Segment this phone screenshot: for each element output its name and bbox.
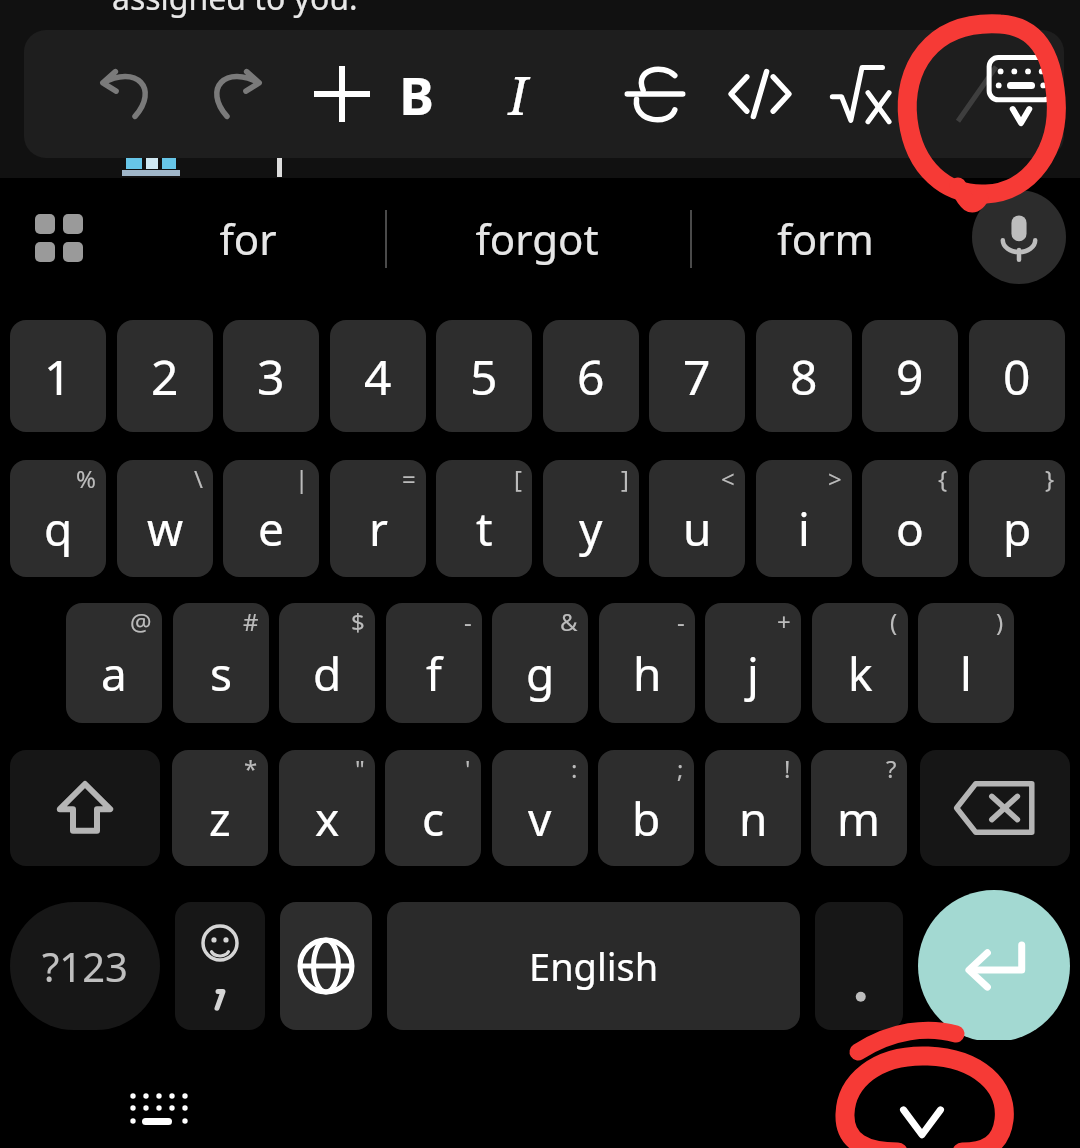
button[interactable]: & — [492, 603, 588, 723]
button[interactable]: ( — [812, 603, 908, 723]
button[interactable]: I — [484, 54, 552, 134]
button[interactable]: - — [386, 603, 482, 723]
button[interactable]: @ — [66, 603, 162, 723]
button[interactable]: % — [10, 460, 106, 577]
staticText: q — [44, 497, 73, 560]
staticText: j — [747, 642, 759, 705]
staticText: > — [828, 462, 842, 495]
button[interactable]: 6 — [543, 320, 639, 432]
staticText: | — [295, 462, 309, 495]
button[interactable]: for — [108, 184, 388, 292]
button[interactable]: [ — [436, 460, 532, 577]
button[interactable]: Toolbar — [20, 199, 98, 277]
button[interactable]: 0 — [969, 320, 1065, 432]
button[interactable]: Insert — [307, 59, 377, 129]
staticText: < — [721, 462, 735, 495]
button[interactable]: 2 — [117, 320, 213, 432]
button[interactable]: Undo — [93, 59, 163, 129]
button[interactable]: 1 — [10, 320, 106, 432]
button[interactable]: 5 — [436, 320, 532, 432]
button[interactable]: Voice input — [972, 190, 1066, 284]
staticText: for — [219, 210, 277, 267]
button[interactable]: 7 — [649, 320, 745, 432]
button[interactable]: Code — [727, 61, 793, 127]
staticText: k — [848, 642, 873, 705]
staticText: ! — [784, 752, 791, 785]
button[interactable]: ?123 — [10, 902, 160, 1030]
button[interactable]: form — [685, 184, 965, 292]
staticText: 9 — [896, 344, 924, 409]
button[interactable]: Keyboard — [120, 1078, 198, 1130]
button[interactable]: + — [705, 603, 801, 723]
button[interactable]: Hide keyboard — [880, 1098, 964, 1148]
staticText: 1 — [44, 344, 72, 409]
button[interactable]: ] — [543, 460, 639, 577]
button[interactable]: 8 — [756, 320, 852, 432]
staticText: [ — [514, 462, 522, 495]
staticText: v — [528, 787, 552, 850]
button[interactable]: Shift — [10, 750, 160, 866]
staticText: * — [244, 752, 258, 785]
staticText: ?123 — [42, 939, 128, 993]
button[interactable]: forgot — [397, 184, 677, 292]
staticText: \ — [194, 462, 203, 495]
staticText: & — [560, 605, 578, 638]
button[interactable]: Backspace — [920, 750, 1070, 866]
button[interactable]: ; — [598, 750, 694, 866]
button[interactable]: | — [223, 460, 319, 577]
button[interactable]: : — [492, 750, 588, 866]
button[interactable]: Redo — [199, 59, 269, 129]
staticText: : — [571, 752, 578, 785]
button[interactable]: * — [172, 750, 268, 866]
staticText: assigned to you. — [112, 0, 358, 20]
staticText: ? — [886, 752, 897, 785]
button[interactable]: ! — [705, 750, 801, 866]
button[interactable]: ? — [811, 750, 907, 866]
staticText: - — [464, 605, 472, 638]
button[interactable]: Enter — [918, 890, 1070, 1042]
button[interactable]: Strikethrough — [622, 61, 688, 127]
staticText: { — [938, 462, 948, 495]
staticText: + — [777, 605, 791, 638]
staticText: r — [369, 497, 388, 560]
staticText: " — [355, 752, 365, 785]
button[interactable]: Emoji — [175, 902, 265, 1030]
staticText: i — [798, 497, 810, 560]
staticText: $ — [351, 605, 365, 638]
button[interactable]: Equation — [831, 61, 897, 127]
button[interactable]: 9 — [862, 320, 958, 432]
button[interactable]: Change language — [280, 902, 372, 1030]
staticText: ' — [465, 752, 471, 785]
button[interactable]: B — [382, 54, 450, 134]
button[interactable]: 3 — [223, 320, 319, 432]
button[interactable]: ' — [385, 750, 481, 866]
button[interactable]: { — [862, 460, 958, 577]
staticText: t — [476, 497, 493, 560]
button[interactable]: > — [756, 460, 852, 577]
button[interactable]: Hide keyboard — [962, 46, 1064, 142]
button[interactable]: - — [599, 603, 695, 723]
staticText: ; — [677, 752, 684, 785]
button[interactable]: \ — [117, 460, 213, 577]
button[interactable]: English — [387, 902, 800, 1030]
button[interactable]: < — [649, 460, 745, 577]
staticText: n — [739, 787, 768, 850]
button[interactable]: } — [969, 460, 1065, 577]
staticText: I — [508, 59, 528, 130]
staticText: 5 — [470, 344, 498, 409]
staticText: = — [402, 462, 416, 495]
button[interactable]: " — [279, 750, 375, 866]
button[interactable]: # — [173, 603, 269, 723]
staticText: s — [210, 642, 233, 705]
button[interactable]: $ — [279, 603, 375, 723]
staticText: 3 — [257, 344, 285, 409]
staticText: c — [422, 787, 445, 850]
button[interactable]: ) — [918, 603, 1014, 723]
button[interactable]: = — [330, 460, 426, 577]
staticText: 6 — [577, 344, 605, 409]
button[interactable]: 4 — [330, 320, 426, 432]
staticText: B — [399, 59, 434, 130]
staticText: w — [147, 497, 184, 560]
staticText: English — [529, 940, 659, 992]
button[interactable]: Period — [815, 902, 903, 1030]
